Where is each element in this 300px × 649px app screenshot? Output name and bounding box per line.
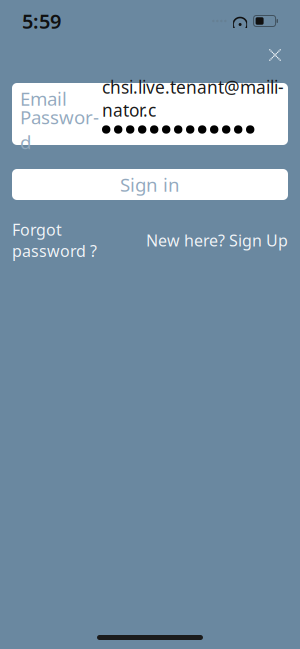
staticText: Email: [20, 86, 67, 111]
button[interactable]: Forgot password ?: [12, 219, 97, 261]
staticText: 5:59: [22, 8, 61, 34]
staticText: Password: [20, 105, 99, 154]
staticText: chsi.live.tenant@mailinator.c: [102, 75, 284, 121]
button[interactable]: Close: [258, 38, 292, 72]
button[interactable]: Sign in: [12, 169, 288, 200]
staticText: Forgot password ?: [12, 219, 97, 261]
staticText: New here? Sign Up: [146, 230, 288, 251]
staticText: Sign in: [120, 172, 180, 197]
button[interactable]: New here? Sign Up: [146, 230, 288, 251]
